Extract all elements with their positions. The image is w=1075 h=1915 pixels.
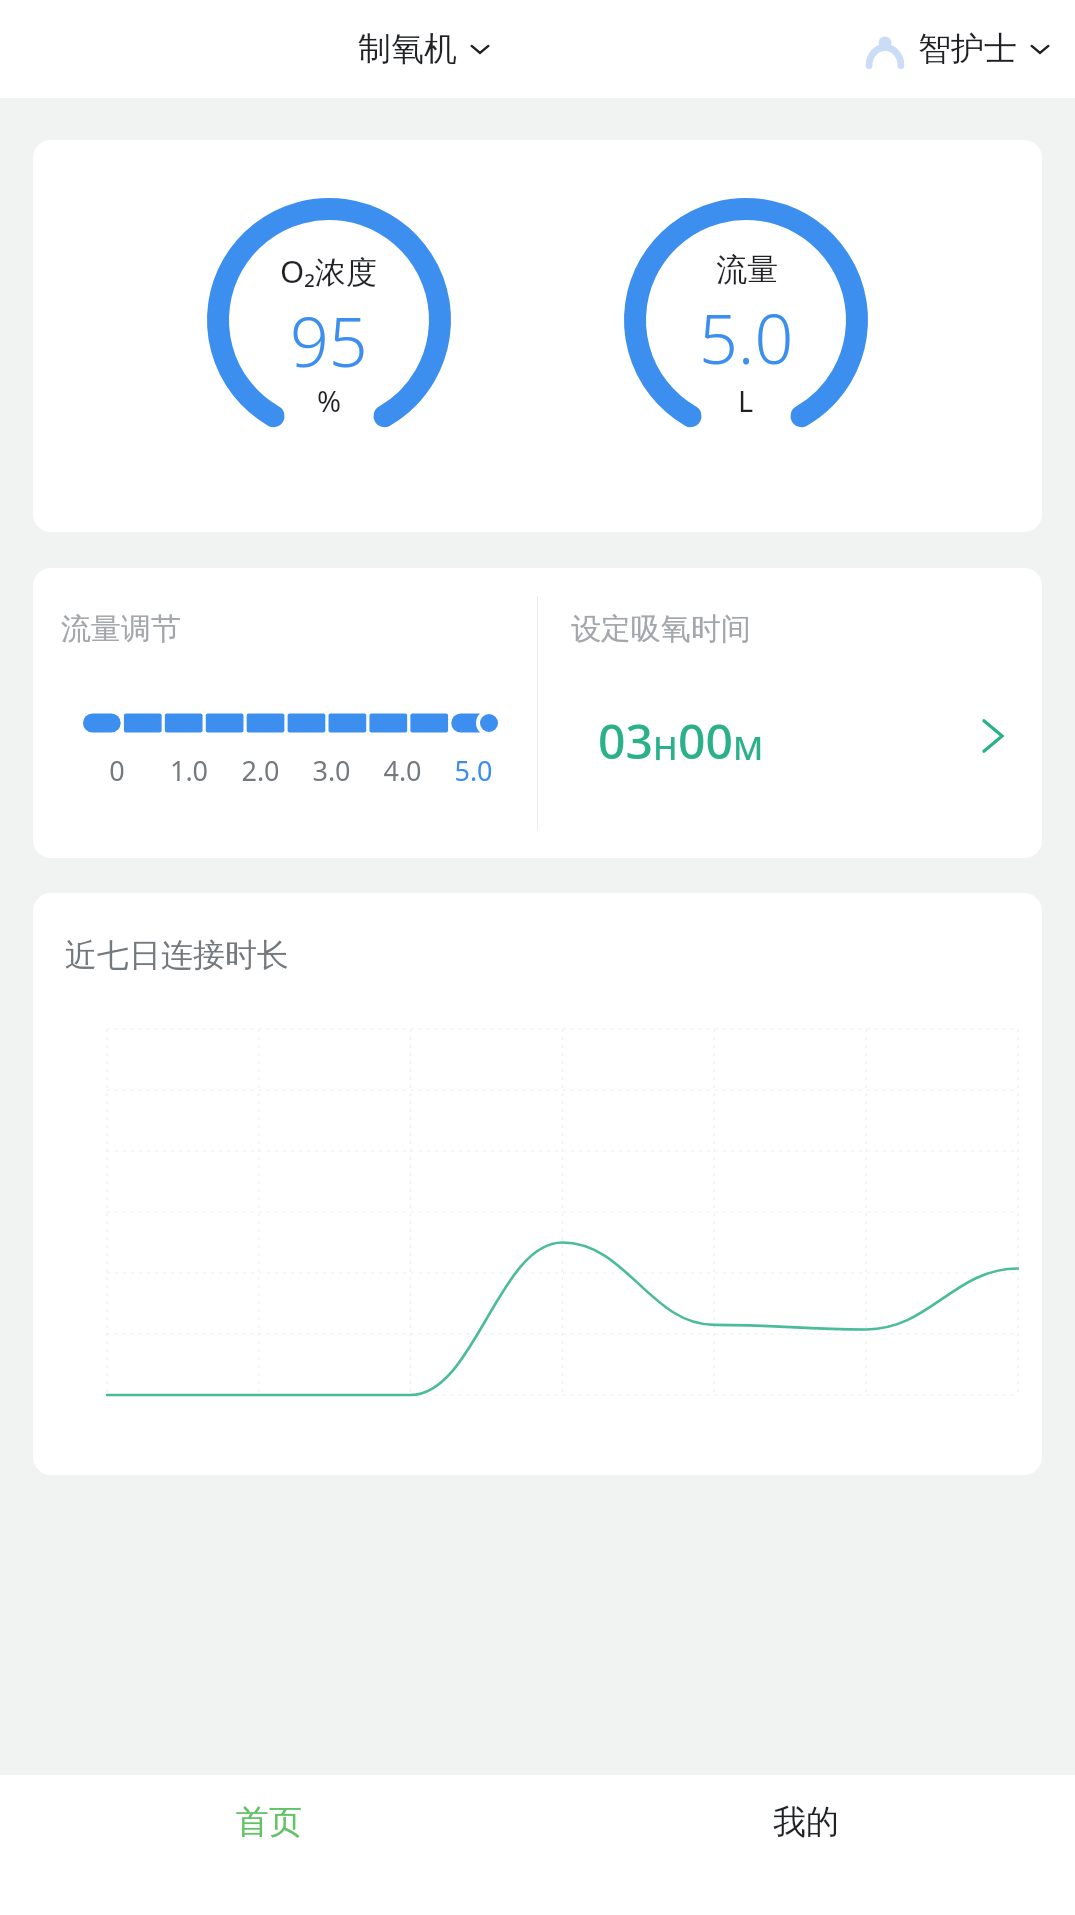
staticText: 我的 [773, 1801, 839, 1843]
staticText: 95 [290, 294, 368, 387]
staticText: 2.0 [225, 752, 296, 789]
staticText: 3.0 [296, 752, 367, 789]
staticText: 5.0 [699, 291, 794, 384]
staticText: 设定吸氧时间 [571, 610, 751, 648]
button[interactable]: 首页 [0, 1775, 537, 1915]
staticText: 近七日连接时长 [65, 935, 289, 975]
staticText: O₂浓度 [280, 250, 378, 292]
button[interactable]: O₂浓度 [33, 140, 1042, 532]
staticText: L [738, 381, 754, 420]
staticText: 制氧机 [358, 28, 457, 70]
other: Account [866, 30, 904, 68]
button[interactable]: 制氧机 [352, 22, 497, 76]
staticText: 1.0 [153, 752, 225, 789]
button[interactable]: 近七日连接时长 [33, 893, 1042, 1475]
staticText: 流量调节 [61, 610, 181, 648]
staticText: 智护士 [918, 28, 1017, 70]
staticText: 4.0 [367, 752, 438, 789]
button[interactable]: Account [860, 22, 1057, 76]
staticText: 首页 [236, 1801, 302, 1843]
staticText: 5.0 [438, 752, 509, 789]
button[interactable]: 我的 [537, 1775, 1075, 1915]
staticText: 0 [81, 752, 153, 789]
staticText: 00 [678, 708, 733, 773]
other: Open time setting [980, 716, 1006, 756]
staticText: % [317, 381, 342, 420]
staticText: 流量 [716, 250, 778, 289]
button[interactable]: 设定吸氧时间 [538, 568, 1042, 858]
staticText: 03 [598, 708, 653, 773]
button[interactable]: 流量调节 [33, 568, 537, 858]
staticText: H [653, 725, 678, 770]
staticText: M [733, 725, 764, 770]
